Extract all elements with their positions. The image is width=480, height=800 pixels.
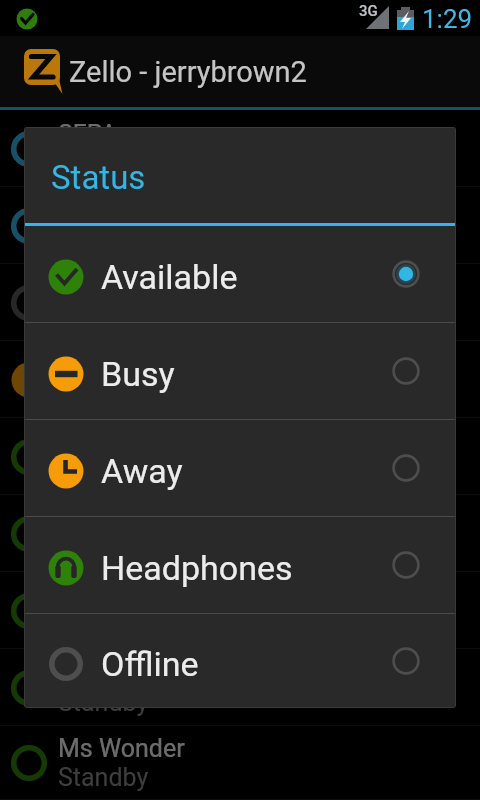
button[interactable]: Ms Wonder <box>0 726 480 800</box>
staticText: Jane Smith <box>58 659 184 688</box>
staticText: Offline <box>58 303 130 332</box>
staticText: Jim <box>58 274 100 303</box>
button[interactable]: Carol <box>0 341 480 418</box>
staticText: Tom <box>58 582 108 611</box>
staticText: Sarah <box>58 505 122 534</box>
staticText: Headphones <box>101 548 293 588</box>
button[interactable]: Mike <box>0 418 480 495</box>
staticText: Standby <box>58 149 149 178</box>
button[interactable]: Sarah <box>0 495 480 572</box>
button[interactable]: Jane Smith <box>0 649 480 726</box>
staticText: Away <box>101 451 183 491</box>
button[interactable]: Jim <box>0 264 480 341</box>
staticText: 1:29 <box>422 4 473 34</box>
staticText: SFPA <box>58 120 118 149</box>
staticText: Mike <box>58 428 112 457</box>
button[interactable]: Available <box>25 226 455 322</box>
button[interactable]: Away <box>25 420 455 516</box>
staticText: Busy <box>101 354 175 394</box>
staticText: Group 2 <box>58 197 146 226</box>
staticText: Zello - jerrybrown2 <box>69 55 307 89</box>
button[interactable]: Tom <box>0 572 480 649</box>
staticText: Standby <box>58 534 149 563</box>
staticText: Standby <box>58 763 149 792</box>
staticText: Ms Wonder <box>58 734 185 763</box>
staticText: Status <box>51 158 146 197</box>
button[interactable]: Busy <box>25 323 455 419</box>
staticText: 3G <box>359 2 378 20</box>
staticText: Standby <box>58 688 149 717</box>
staticText: Standby <box>58 457 149 486</box>
button[interactable]: Group 2 <box>0 187 480 264</box>
staticText: Available <box>101 257 238 297</box>
button[interactable]: SFPA <box>0 110 480 187</box>
staticText: Offline <box>101 644 199 684</box>
button[interactable]: Headphones <box>25 517 455 613</box>
staticText: Carol <box>58 351 117 380</box>
button[interactable]: Offline <box>25 614 455 707</box>
staticText: Standby <box>58 611 149 640</box>
staticText: Busy <box>58 380 113 409</box>
